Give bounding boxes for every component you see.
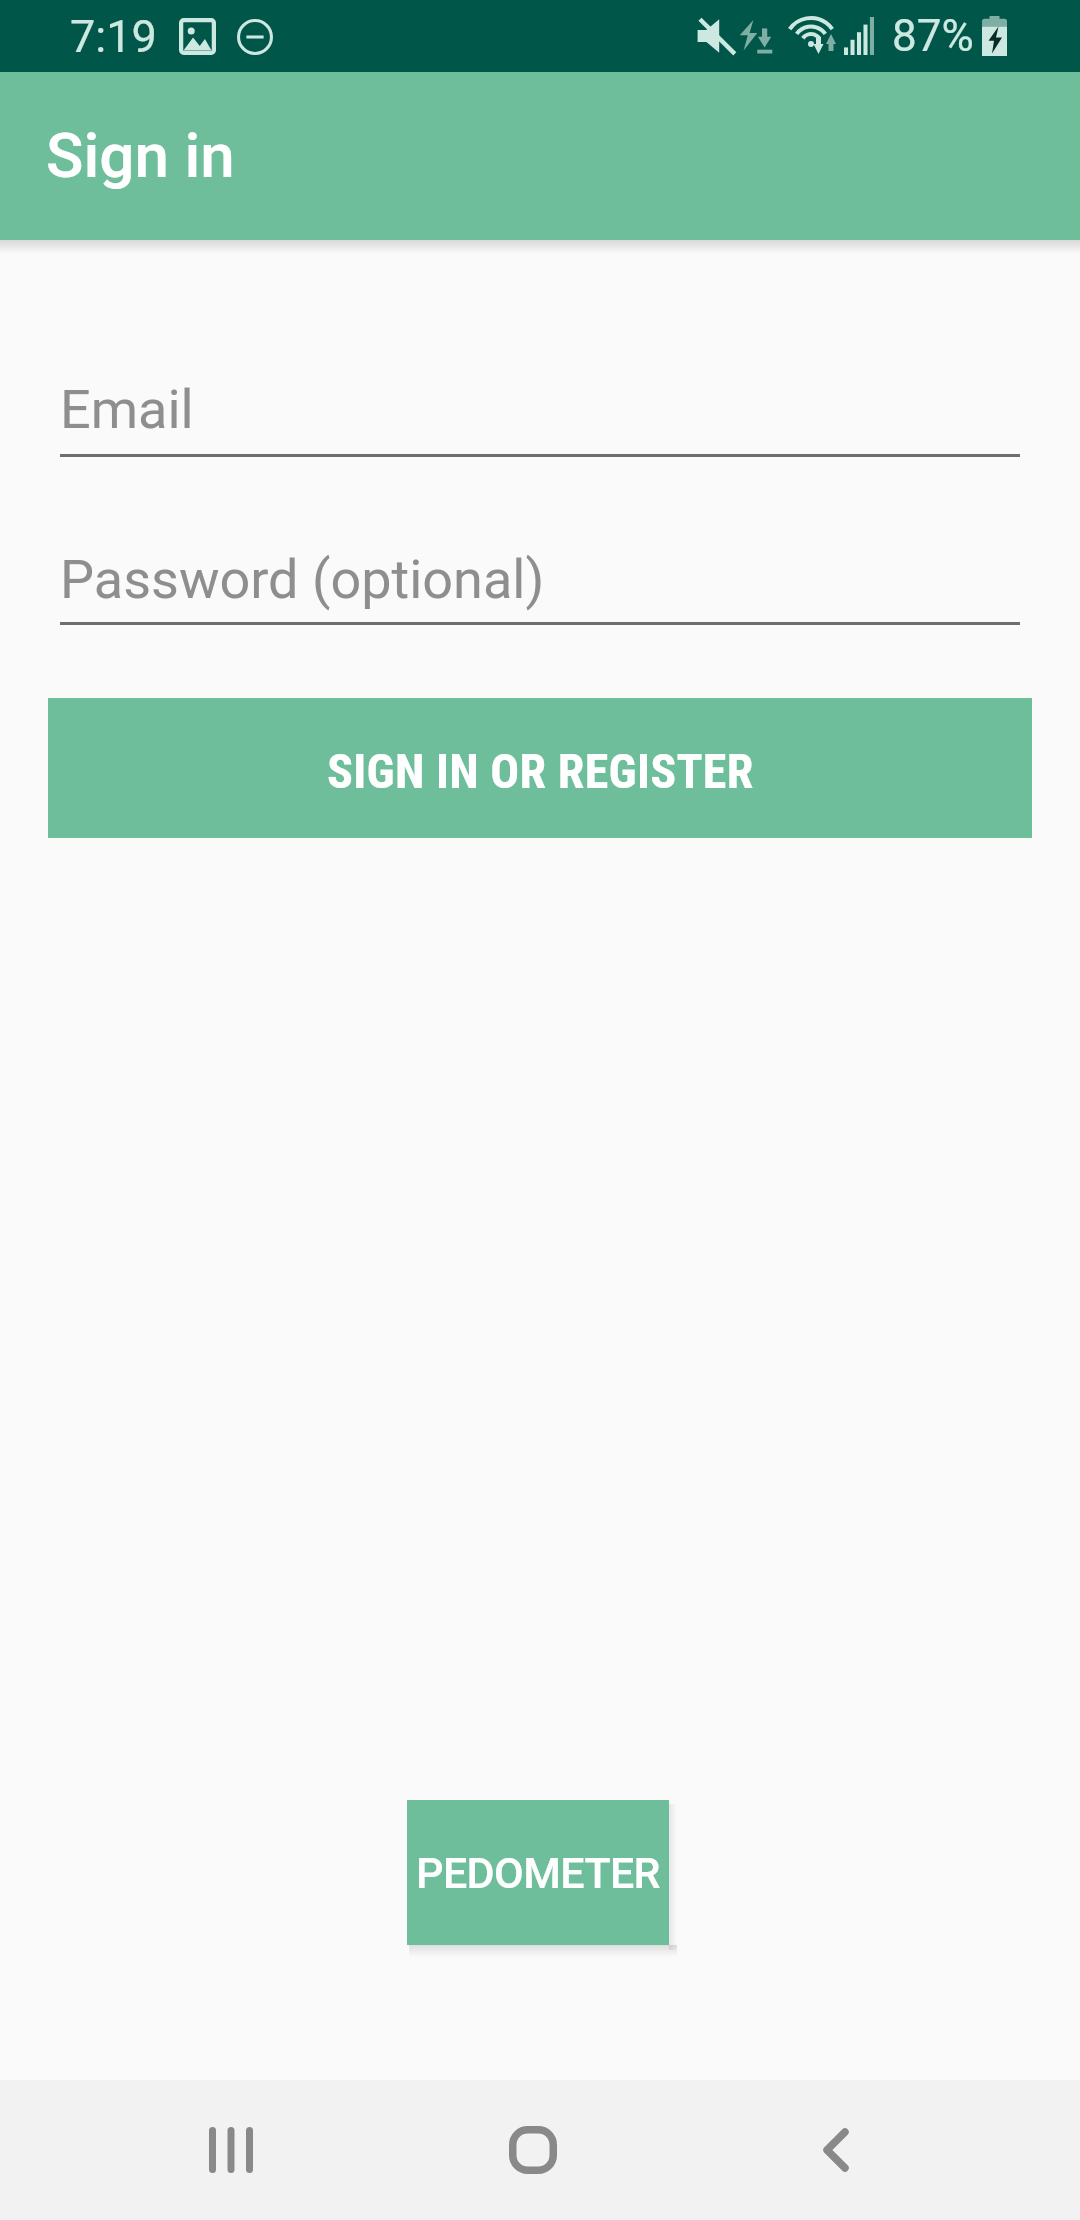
- staticText: Sign in: [46, 119, 235, 192]
- button[interactable]: Recent apps: [161, 2080, 301, 2220]
- staticText: 87%: [892, 10, 974, 62]
- button[interactable]: PEDOMETER: [407, 1800, 669, 1945]
- button[interactable]: Home: [463, 2080, 603, 2220]
- button[interactable]: Back: [766, 2080, 906, 2220]
- staticText: 7:19: [70, 10, 157, 63]
- staticText: Password (optional): [60, 548, 545, 611]
- button[interactable]: SIGN IN OR REGISTER: [48, 698, 1032, 838]
- staticText: SIGN IN OR REGISTER: [327, 743, 754, 799]
- staticText: Email: [60, 378, 194, 441]
- staticText: PEDOMETER: [416, 1848, 660, 1898]
